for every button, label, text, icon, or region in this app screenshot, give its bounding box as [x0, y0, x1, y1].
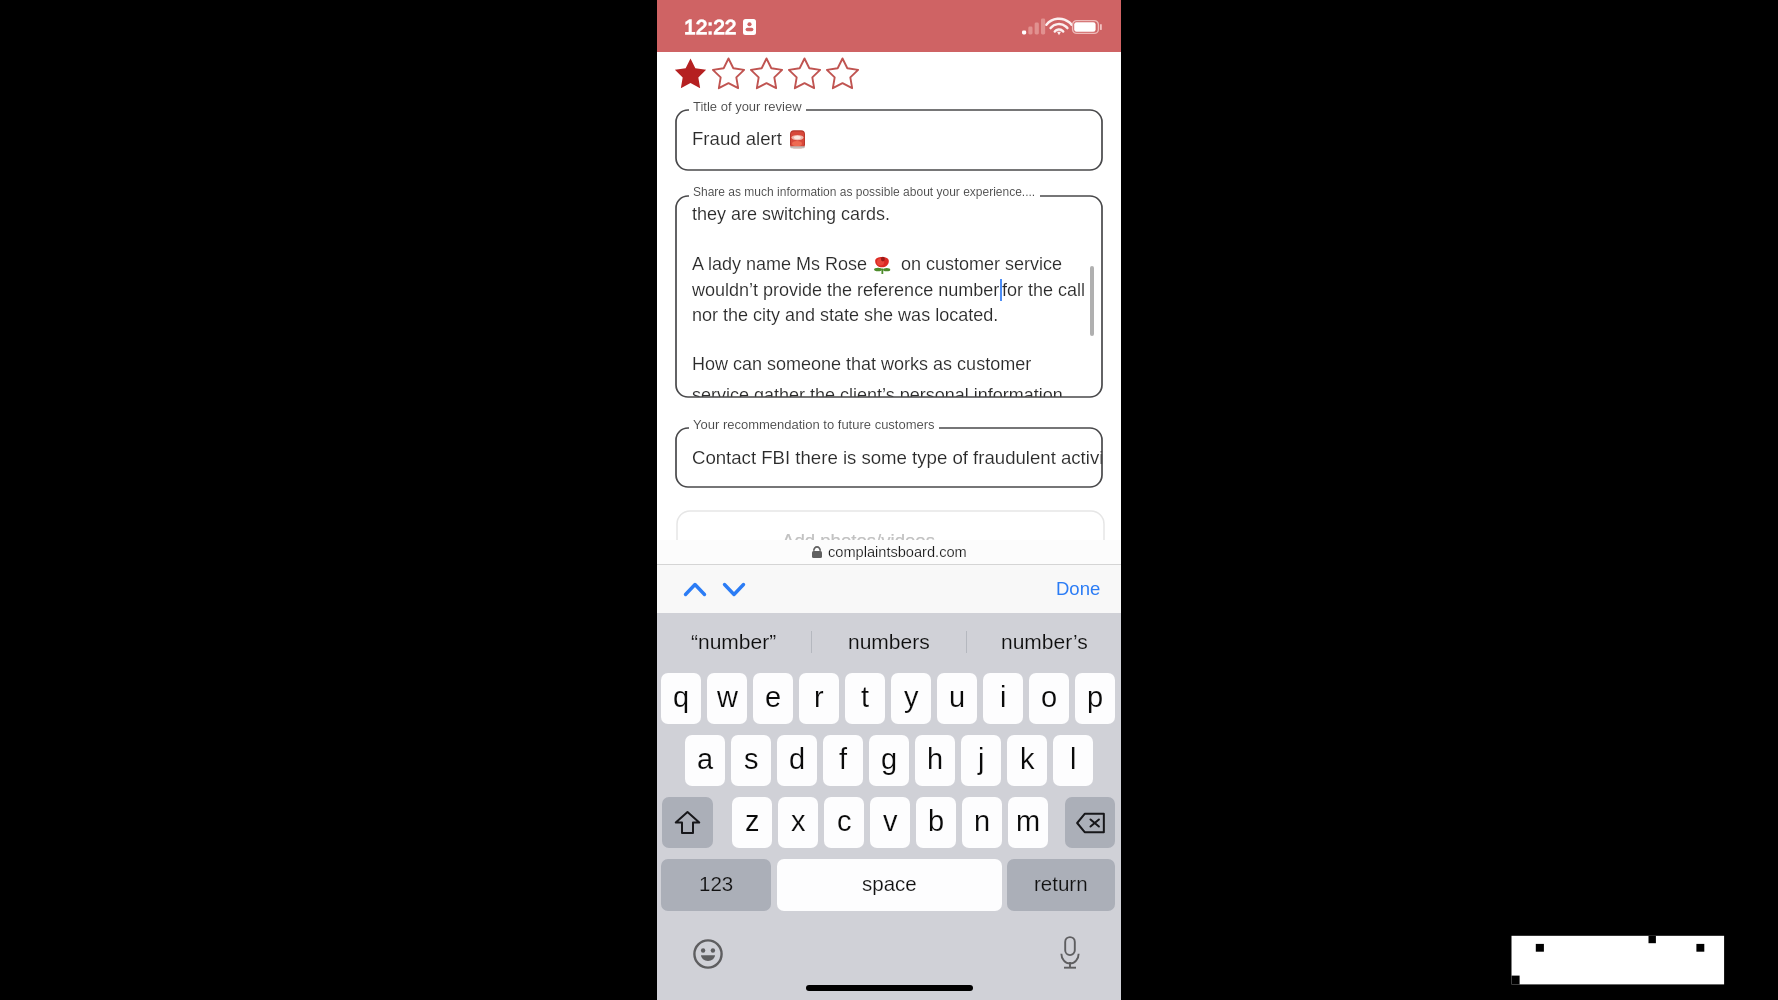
staticText: return	[1034, 872, 1088, 895]
staticText: i	[1000, 681, 1007, 713]
button[interactable]: a	[685, 735, 725, 786]
staticText: for the call	[1002, 280, 1086, 300]
button[interactable]: Backspace	[1065, 797, 1115, 848]
staticText: l	[1070, 743, 1077, 775]
staticText: v	[883, 805, 898, 837]
button[interactable]: number’s	[967, 613, 1121, 670]
staticText: w	[717, 681, 738, 713]
staticText: q	[673, 681, 690, 713]
button[interactable]: Rate 2 stars	[713, 58, 744, 89]
staticText: t	[861, 681, 870, 713]
button[interactable]: Rate 4 stars	[789, 58, 820, 89]
button[interactable]: numbers	[812, 613, 966, 670]
staticText: d	[789, 743, 806, 775]
staticText: Title of your review	[693, 99, 802, 114]
button[interactable]: Add photos/videos	[677, 511, 1104, 571]
staticText: 12:22	[684, 15, 737, 38]
button[interactable]: space	[777, 859, 1002, 911]
button[interactable]: 123	[661, 859, 771, 911]
staticText: A lady name Ms Rose	[692, 254, 873, 274]
button[interactable]: w	[707, 673, 747, 724]
staticText: g	[881, 743, 898, 775]
staticText: complaintsboard.com	[828, 544, 967, 560]
button[interactable]: y	[891, 673, 931, 724]
button[interactable]: “number”	[657, 613, 811, 670]
staticText: space	[862, 872, 917, 895]
button[interactable]: z	[732, 797, 772, 848]
button[interactable]: Shift	[662, 797, 713, 848]
staticText: 123	[699, 872, 734, 895]
button[interactable]: i	[983, 673, 1023, 724]
staticText: f	[839, 743, 848, 775]
button[interactable]: Previous field	[677, 571, 713, 607]
button[interactable]: return	[1007, 859, 1115, 911]
staticText: h	[927, 743, 944, 775]
button[interactable]: u	[937, 673, 977, 724]
button[interactable]: t	[845, 673, 885, 724]
button[interactable]: Title of your review	[676, 110, 1102, 170]
button[interactable]: h	[915, 735, 955, 786]
button[interactable]: Dictation	[1058, 936, 1082, 972]
button[interactable]: Rate 1 stars	[675, 58, 706, 89]
staticText: they are switching cards.	[692, 204, 891, 224]
button[interactable]: c	[824, 797, 864, 848]
button[interactable]: r	[799, 673, 839, 724]
staticText: Add photos/videos	[782, 530, 935, 551]
staticText: Your recommendation to future customers	[693, 417, 935, 432]
staticText: n	[974, 805, 991, 837]
staticText: z	[745, 805, 760, 837]
staticText: number’s	[1001, 630, 1088, 653]
button[interactable]: Next field	[716, 571, 752, 607]
button[interactable]: q	[661, 673, 701, 724]
staticText: on customer service	[891, 254, 1063, 274]
staticText: b	[928, 805, 945, 837]
button[interactable]: n	[962, 797, 1002, 848]
button[interactable]: v	[870, 797, 910, 848]
button[interactable]: l	[1053, 735, 1093, 786]
button[interactable]: x	[778, 797, 818, 848]
button[interactable]: p	[1075, 673, 1115, 724]
staticText: u	[949, 681, 966, 713]
button[interactable]: f	[823, 735, 863, 786]
staticText: Share as much information as possible ab…	[693, 185, 1036, 198]
button[interactable]: k	[1007, 735, 1047, 786]
button[interactable]: Address bar, complaintsboard.com	[657, 540, 1121, 564]
staticText: c	[837, 805, 852, 837]
button[interactable]: Done	[1036, 568, 1121, 609]
staticText: m	[1016, 805, 1041, 837]
button[interactable]: Rate 5 stars	[827, 58, 858, 89]
staticText: s	[744, 743, 759, 775]
button[interactable]: d	[777, 735, 817, 786]
button[interactable]: Share as much information as possible ab…	[676, 196, 1102, 397]
staticText: o	[1041, 681, 1058, 713]
button[interactable]: s	[731, 735, 771, 786]
staticText: wouldn’t provide the reference number	[692, 280, 1000, 300]
staticText: a	[697, 743, 714, 775]
button[interactable]: g	[869, 735, 909, 786]
button[interactable]: e	[753, 673, 793, 724]
staticText: j	[978, 743, 985, 775]
staticText: “number”	[691, 630, 777, 653]
staticText: k	[1020, 743, 1035, 775]
staticText: numbers	[848, 630, 930, 653]
staticText: nor the city and state she was located.	[692, 305, 999, 325]
staticText: How can someone that works as customer	[692, 354, 1032, 374]
button[interactable]: Emoji	[693, 939, 723, 969]
button[interactable]: Your recommendation to future customers	[676, 428, 1102, 487]
button[interactable]: j	[961, 735, 1001, 786]
staticText: service gather the client’s personal inf…	[692, 385, 1063, 397]
button[interactable]: b	[916, 797, 956, 848]
staticText: e	[765, 681, 782, 713]
staticText: Fraud alert	[692, 128, 782, 149]
staticText: r	[814, 681, 824, 713]
button[interactable]: Rate 3 stars	[751, 58, 782, 89]
button[interactable]: m	[1008, 797, 1048, 848]
staticText: y	[904, 681, 919, 713]
staticText: Done	[1056, 578, 1101, 599]
staticText: x	[791, 805, 806, 837]
staticText: p	[1087, 681, 1104, 713]
button[interactable]: o	[1029, 673, 1069, 724]
staticText: Contact FBI there is some type of fraudu…	[692, 447, 1104, 468]
